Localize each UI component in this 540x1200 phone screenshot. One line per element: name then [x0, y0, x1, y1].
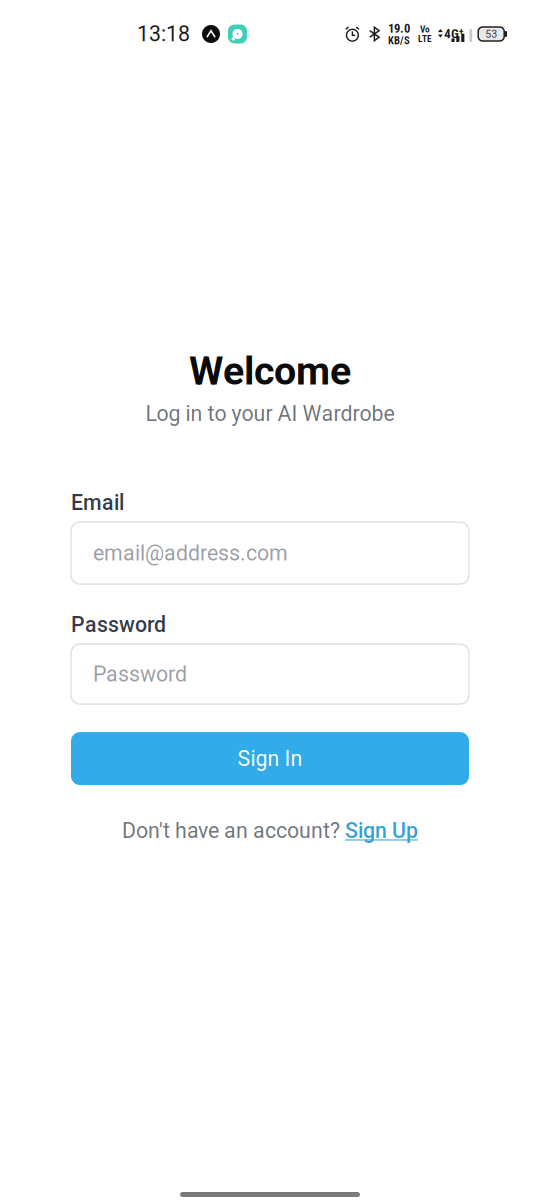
button[interactable]: email@address.com	[71, 522, 469, 584]
staticText: Email	[71, 490, 124, 515]
button[interactable]: Password	[71, 644, 469, 704]
staticText: Don't have an account?	[122, 818, 345, 843]
staticText: 4G	[444, 26, 459, 42]
staticText: 53	[485, 28, 497, 40]
staticText: Password	[71, 612, 166, 637]
staticText: email@address.com	[93, 541, 288, 566]
staticText: 19.0	[388, 21, 410, 36]
staticText: Vo	[420, 24, 430, 35]
staticText: Log in to your AI Wardrobe	[145, 401, 394, 426]
staticText: KB/S	[388, 34, 410, 47]
button[interactable]: Sign In	[71, 732, 469, 785]
staticText: Sign Up	[345, 818, 418, 843]
staticText: Password	[93, 662, 187, 687]
staticText: Sign In	[237, 746, 302, 771]
staticText: 13:18	[137, 21, 190, 46]
staticText: Welcome	[189, 348, 351, 394]
button[interactable]: Sign Up	[345, 818, 418, 843]
staticText: LTE	[418, 33, 432, 44]
staticText: +	[459, 26, 463, 37]
